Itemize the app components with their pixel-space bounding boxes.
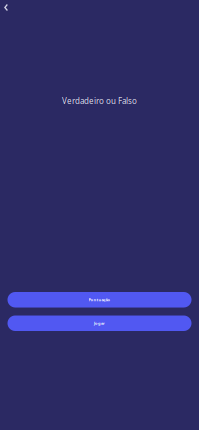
staticText: Verdadeiro ou Falso: [62, 95, 137, 106]
button[interactable]: Pontuação: [7, 292, 191, 307]
button[interactable]: Jogar: [7, 315, 191, 331]
button[interactable]: Back: [0, 0, 14, 15]
staticText: Jogar: [94, 321, 105, 326]
staticText: Pontuação: [88, 297, 110, 302]
